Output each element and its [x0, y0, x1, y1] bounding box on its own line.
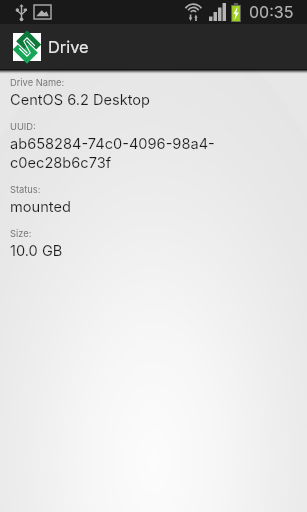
button[interactable]: Drive — [0, 24, 307, 69]
staticText: Drive — [48, 37, 89, 57]
staticText: 10.0 GB — [10, 242, 63, 260]
staticText: UUID: — [10, 121, 36, 132]
staticText: c0ec28b6c73f — [10, 154, 112, 172]
staticText: Status: — [10, 184, 41, 195]
staticText: Drive Name: — [10, 77, 65, 88]
staticText: 00:35 — [249, 2, 294, 21]
staticText: CentOS 6.2 Desktop — [10, 91, 151, 109]
staticText: mounted — [10, 198, 71, 216]
staticText: Size: — [10, 228, 32, 239]
staticText: ab658284-74c0-4096-98a4- — [10, 135, 215, 153]
